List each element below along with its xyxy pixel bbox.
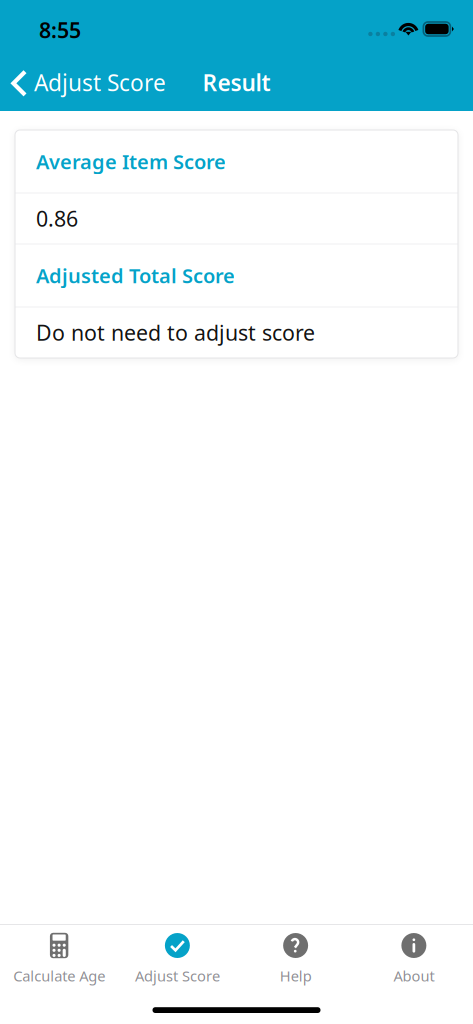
staticText: Adjusted Total Score xyxy=(36,262,235,289)
button[interactable]: Help xyxy=(236,925,355,990)
staticText: 8:55 xyxy=(39,16,81,44)
button[interactable]: Calculate Age xyxy=(0,925,118,990)
button[interactable]: Adjust Score xyxy=(118,925,236,990)
staticText: Result xyxy=(202,67,270,97)
staticText: Do not need to adjust score xyxy=(36,318,315,347)
staticText: Help xyxy=(280,966,312,985)
staticText: Adjust Score xyxy=(135,966,220,985)
staticText: 0.86 xyxy=(36,204,78,233)
staticText: Average Item Score xyxy=(36,148,226,175)
staticText: Adjust Score xyxy=(34,67,166,97)
button[interactable]: About xyxy=(355,925,473,990)
staticText: Calculate Age xyxy=(13,966,105,985)
staticText: About xyxy=(393,966,434,985)
button[interactable]: Back to Adjust Score xyxy=(0,54,178,104)
